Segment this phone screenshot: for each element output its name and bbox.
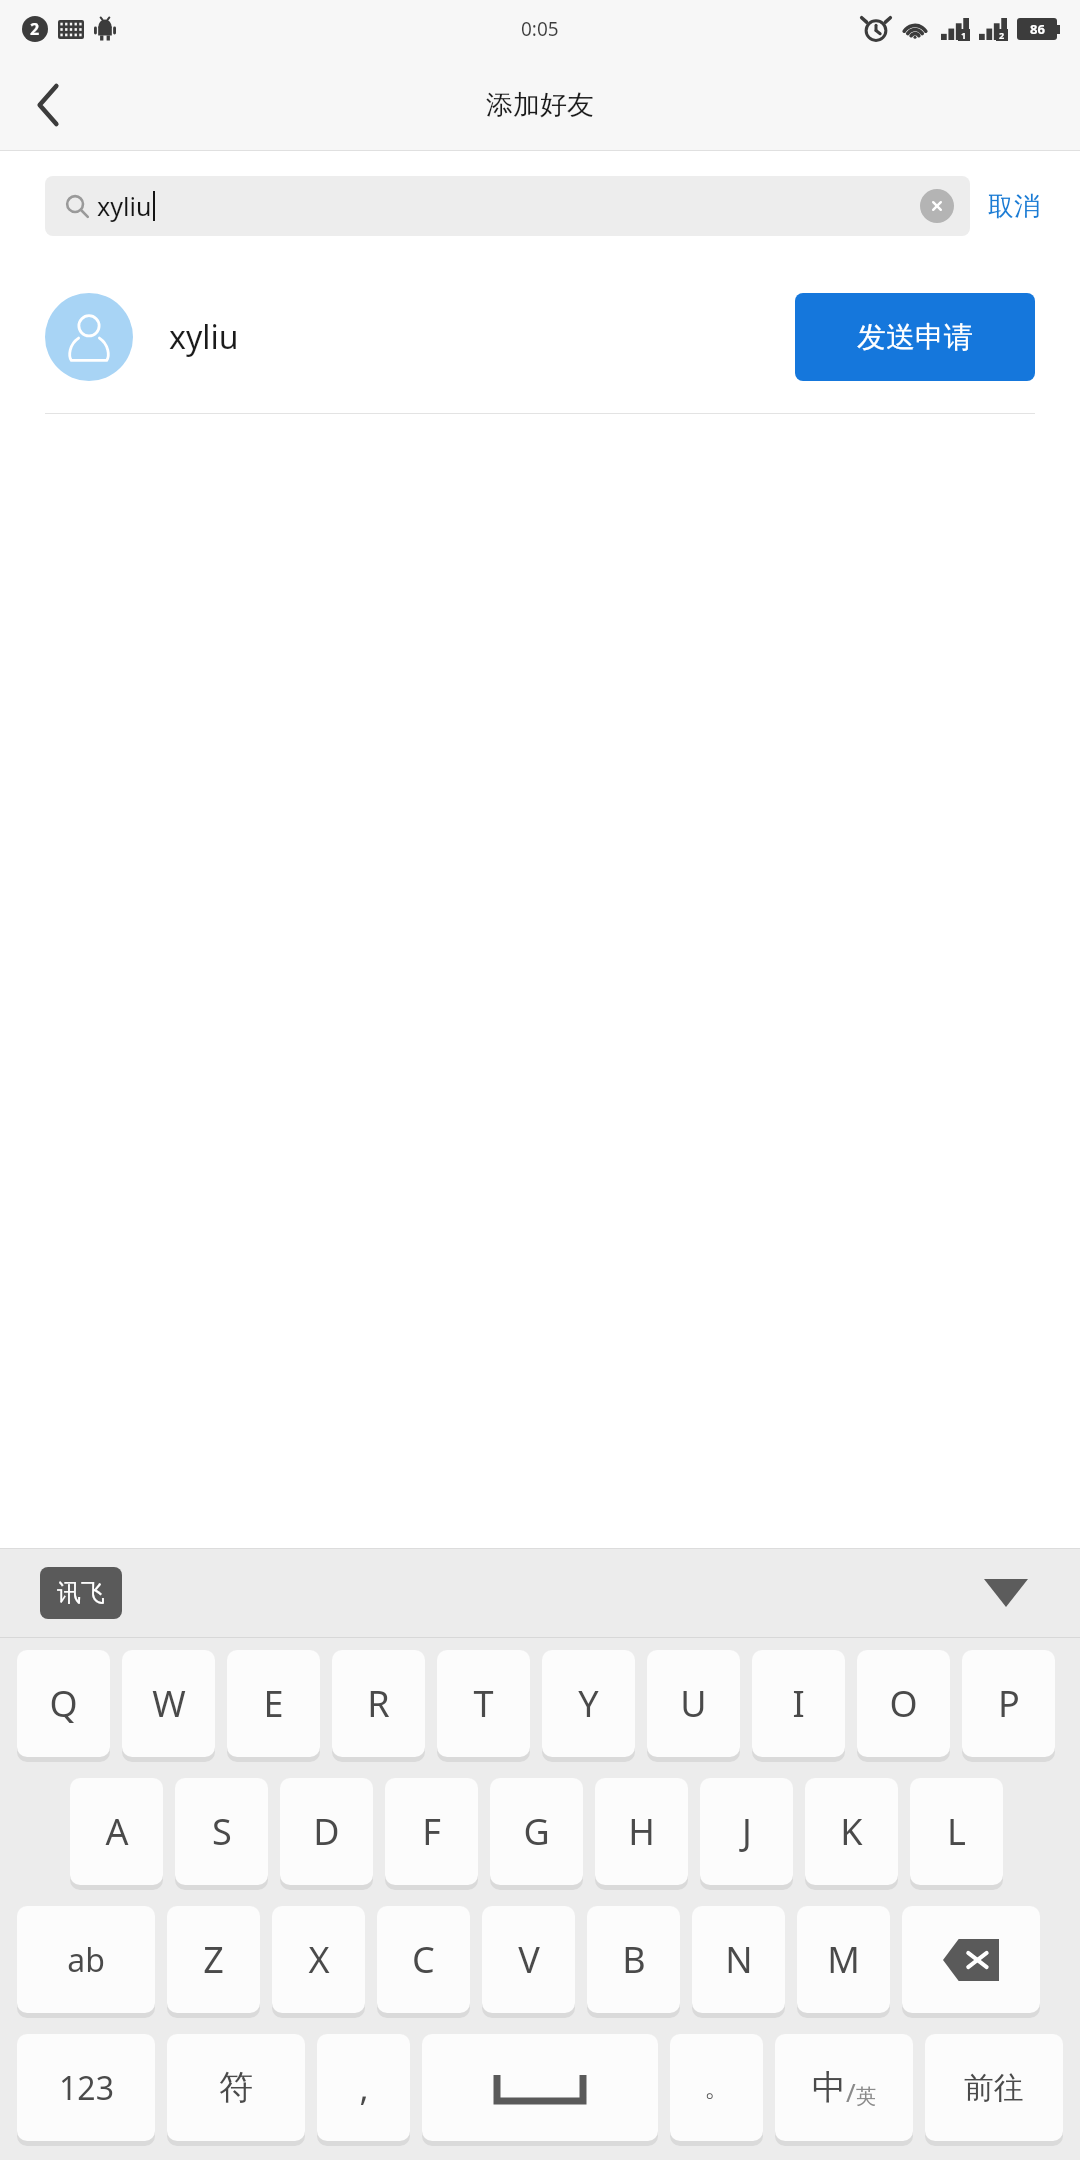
button[interactable]: Input method	[40, 1567, 122, 1619]
staticText: ,	[359, 2065, 369, 2111]
staticText: B	[622, 1935, 646, 1984]
staticText: A	[105, 1807, 129, 1856]
button[interactable]: xyliu	[0, 261, 1080, 413]
staticText: 0:05	[521, 16, 559, 42]
button[interactable]: M	[797, 1906, 890, 2013]
button[interactable]: E	[227, 1650, 320, 1757]
staticText: X	[308, 1935, 330, 1984]
staticText: Y	[578, 1679, 599, 1728]
button[interactable]: D	[280, 1778, 373, 1885]
staticText: N	[725, 1935, 753, 1984]
staticText: 中	[812, 2066, 846, 2109]
button[interactable]: C	[377, 1906, 470, 2013]
staticText: /	[846, 2074, 856, 2109]
button[interactable]: xyliu	[45, 176, 970, 236]
button[interactable]: Clear text	[920, 189, 954, 223]
button[interactable]: Z	[167, 1906, 260, 2013]
button[interactable]: H	[595, 1778, 688, 1885]
staticText: 添加好友	[486, 88, 594, 122]
button[interactable]: K	[805, 1778, 898, 1885]
staticText: I	[792, 1679, 805, 1728]
button[interactable]: B	[587, 1906, 680, 2013]
button[interactable]: Chinese English toggle	[775, 2034, 913, 2141]
staticText: D	[313, 1807, 340, 1856]
button[interactable]: Y	[542, 1650, 635, 1757]
staticText: S	[212, 1807, 232, 1856]
button[interactable]: I	[752, 1650, 845, 1757]
staticText: 2	[999, 29, 1005, 41]
button[interactable]: Hide keyboard	[976, 1563, 1036, 1623]
staticText: O	[889, 1679, 918, 1728]
button[interactable]: U	[647, 1650, 740, 1757]
staticText: 1	[961, 29, 967, 41]
button[interactable]: ab	[17, 1906, 155, 2013]
button[interactable]: S	[175, 1778, 268, 1885]
button[interactable]: J	[700, 1778, 793, 1885]
staticText: 前往	[964, 2069, 1024, 2107]
button[interactable]: Q	[17, 1650, 110, 1757]
staticText: L	[947, 1807, 966, 1856]
staticText: 123	[59, 2066, 114, 2110]
staticText: xyliu	[169, 315, 239, 359]
staticText: 讯飞	[57, 1578, 105, 1608]
staticText: 2	[30, 18, 40, 40]
button[interactable]: R	[332, 1650, 425, 1757]
staticText: U	[680, 1679, 707, 1728]
staticText: E	[263, 1679, 284, 1728]
staticText: F	[422, 1807, 441, 1856]
staticText: W	[152, 1679, 186, 1728]
staticText: 86	[1030, 20, 1045, 38]
staticText: M	[827, 1935, 860, 1984]
staticText: C	[412, 1935, 435, 1984]
button[interactable]: L	[910, 1778, 1003, 1885]
staticText: T	[473, 1679, 494, 1728]
button[interactable]: T	[437, 1650, 530, 1757]
button[interactable]: N	[692, 1906, 785, 2013]
staticText: V	[518, 1935, 540, 1984]
button[interactable]: 。	[670, 2034, 763, 2141]
button[interactable]: 取消	[970, 151, 1058, 261]
staticText: 英	[856, 2084, 876, 2109]
button[interactable]: 前往	[925, 2034, 1063, 2141]
staticText: Z	[203, 1935, 224, 1984]
staticText: J	[742, 1807, 752, 1856]
staticText: ab	[67, 1938, 105, 1982]
staticText: 。	[704, 2071, 730, 2104]
staticText: 符	[219, 2066, 253, 2109]
staticText: xyliu	[97, 189, 152, 223]
button[interactable]: 符	[167, 2034, 305, 2141]
staticText: H	[628, 1807, 655, 1856]
button[interactable]: Space	[422, 2034, 658, 2141]
button[interactable]: 123	[17, 2034, 155, 2141]
staticText: 取消	[988, 190, 1040, 223]
button[interactable]: F	[385, 1778, 478, 1885]
button[interactable]: P	[962, 1650, 1055, 1757]
button[interactable]: 发送申请	[795, 293, 1035, 381]
staticText: K	[840, 1807, 863, 1856]
button[interactable]: V	[482, 1906, 575, 2013]
staticText: G	[523, 1807, 550, 1856]
button[interactable]: O	[857, 1650, 950, 1757]
button[interactable]: A	[70, 1778, 163, 1885]
button[interactable]: Backspace	[902, 1906, 1040, 2013]
button[interactable]: W	[122, 1650, 215, 1757]
button[interactable]: Back	[0, 58, 96, 151]
staticText: Q	[49, 1679, 78, 1728]
staticText: 发送申请	[857, 319, 973, 356]
button[interactable]: X	[272, 1906, 365, 2013]
staticText: P	[998, 1679, 1020, 1728]
button[interactable]: ,	[317, 2034, 410, 2141]
button[interactable]: G	[490, 1778, 583, 1885]
staticText: R	[367, 1679, 390, 1728]
